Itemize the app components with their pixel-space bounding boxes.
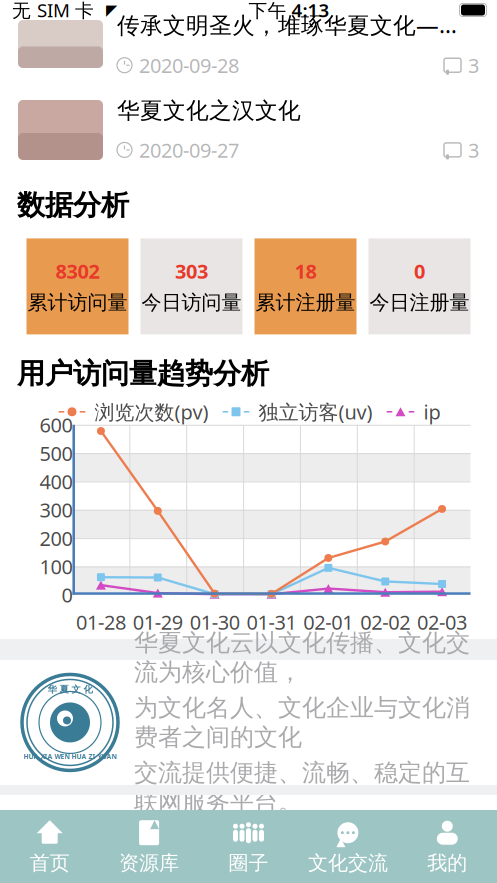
- staticText: 用户访问量趋势分析: [17, 356, 269, 391]
- staticText: 传承文明圣火，堆琢华夏文化——四陕发返址: [117, 9, 479, 40]
- staticText: 01-29: [133, 609, 183, 635]
- button[interactable]: 我的: [398, 810, 497, 883]
- staticText: 今日访问量: [141, 290, 241, 315]
- staticText: 02-03: [417, 609, 467, 635]
- staticText: 600: [39, 411, 72, 438]
- staticText: ◤: [106, 2, 117, 18]
- staticText: 303: [175, 258, 208, 284]
- staticText: 01-30: [190, 609, 240, 635]
- button[interactable]: 8302: [26, 238, 128, 334]
- staticText: 今日注册量: [369, 290, 469, 315]
- staticText: 2020-09-27: [139, 137, 239, 163]
- staticText: [94, 0, 106, 25]
- staticText: 华 夏 文 化: [47, 684, 92, 695]
- staticText: 01-31: [246, 609, 296, 635]
- staticText: 0: [414, 258, 425, 284]
- staticText: 200: [39, 525, 72, 551]
- staticText: HUA XIA WEN HUA ZI YUAN: [23, 752, 116, 761]
- staticText: 累计注册量: [255, 290, 355, 315]
- staticText: 400: [39, 468, 72, 495]
- staticText: 数据分析: [17, 188, 129, 222]
- staticText: ip: [423, 398, 440, 425]
- button[interactable]: 303: [140, 238, 242, 334]
- staticText: 我的: [427, 851, 467, 875]
- staticText: 02-01: [303, 609, 353, 635]
- staticText: 交流提供便捷、流畅、稳定的互联网服务平台。: [134, 758, 470, 817]
- button[interactable]: 0: [368, 238, 470, 334]
- staticText: 02-02: [360, 609, 410, 635]
- staticText: 首页: [30, 851, 70, 875]
- staticText: 0: [61, 581, 72, 608]
- staticText: 累计访问量: [27, 290, 127, 315]
- staticText: 华夏文化云以文化传播、文化交流为核心价值，: [134, 628, 470, 687]
- staticText: 无 SIM 卡: [12, 0, 94, 22]
- staticText: 3: [468, 137, 479, 163]
- staticText: 3: [468, 52, 479, 78]
- staticText: 资源库: [119, 851, 179, 875]
- button[interactable]: 圈子: [199, 810, 298, 883]
- staticText: 文化交流: [308, 851, 388, 875]
- staticText: 华夏文化之汉文化: [117, 97, 301, 125]
- staticText: 浏览次数(pv): [94, 398, 208, 425]
- staticText: 18: [294, 258, 316, 284]
- staticText: 300: [39, 496, 72, 523]
- button[interactable]: 文化交流: [298, 810, 398, 883]
- button[interactable]: 华夏文化之汉文化: [0, 100, 497, 160]
- staticText: 独立访客(uv): [258, 398, 372, 425]
- button[interactable]: 传承文明圣火，堆琢华夏文化——四陕发返址: [0, 20, 497, 68]
- staticText: 01-28: [76, 609, 126, 635]
- staticText: 500: [39, 440, 72, 466]
- staticText: 为文化名人、文化企业与文化消费者之间的文化: [134, 693, 470, 752]
- staticText: 下午 4:13: [248, 0, 329, 22]
- button[interactable]: 资源库: [99, 810, 199, 883]
- staticText: 100: [39, 553, 72, 580]
- staticText: 圈子: [228, 851, 268, 875]
- button[interactable]: 首页: [0, 810, 99, 883]
- button[interactable]: 18: [254, 238, 356, 334]
- staticText: 2020-09-28: [139, 52, 239, 78]
- staticText: 8302: [55, 258, 99, 284]
